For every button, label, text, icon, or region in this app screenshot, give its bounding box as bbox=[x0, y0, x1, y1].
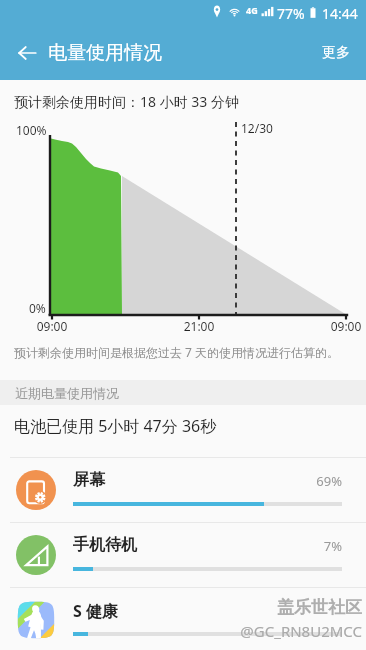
staticText: 手机待机 bbox=[73, 535, 137, 555]
staticText: 14:44 bbox=[322, 4, 358, 23]
staticText: @GC_RN8U2MCC bbox=[180, 621, 362, 641]
staticText: 屏幕 bbox=[73, 470, 105, 490]
staticText: S 健康 bbox=[73, 600, 118, 622]
staticText: 7% bbox=[280, 537, 342, 555]
staticText: 12/30 bbox=[241, 120, 273, 136]
button[interactable]: 更多 bbox=[306, 29, 366, 77]
staticText: 更多 bbox=[322, 44, 350, 62]
staticText: 77% bbox=[277, 4, 305, 23]
staticText: 预计剩余使用时间是根据您过去 7 天的使用情况进行估算的。 bbox=[14, 344, 340, 360]
staticText: 21:00 bbox=[174, 318, 224, 334]
button[interactable]: S 健康 bbox=[0, 587, 366, 650]
staticText: 预计剩余使用时间：18 小时 33 分钟 bbox=[14, 92, 239, 111]
staticText: 电池已使用 5小时 47分 36秒 bbox=[14, 415, 217, 437]
staticText: 电量使用情况 bbox=[48, 41, 162, 65]
staticText: 100% bbox=[16, 122, 47, 138]
staticText: 盖乐世社区 bbox=[180, 597, 362, 618]
staticText: 近期电量使用情况 bbox=[15, 385, 119, 401]
staticText: 09:00 bbox=[27, 318, 77, 334]
staticText: 69% bbox=[280, 472, 342, 490]
staticText: 09:00 bbox=[321, 318, 366, 334]
button[interactable]: 屏幕 bbox=[0, 457, 366, 522]
staticText: 4G bbox=[246, 4, 258, 16]
staticText: 0% bbox=[29, 300, 46, 316]
button[interactable]: 手机待机 bbox=[0, 522, 366, 587]
button[interactable]: Back bbox=[6, 32, 48, 74]
